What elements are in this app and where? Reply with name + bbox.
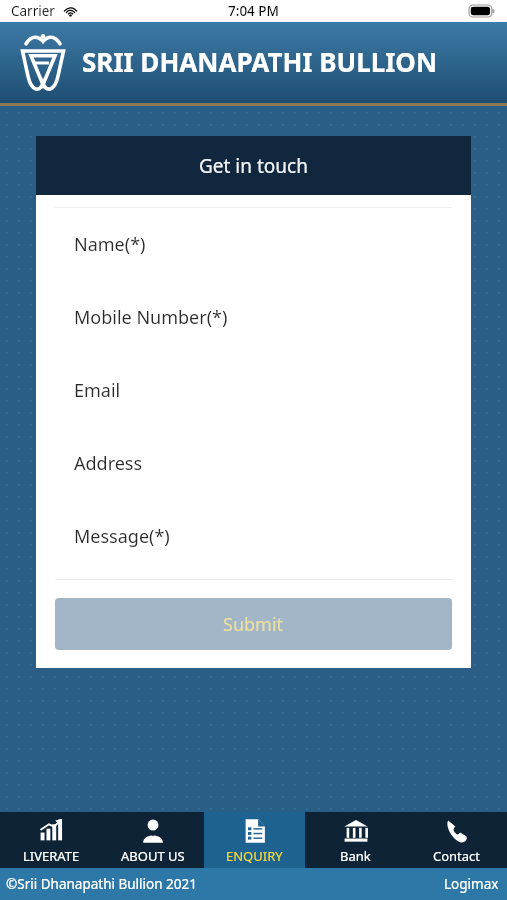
button[interactable]: About us [102, 812, 204, 868]
button[interactable]: Live rate [0, 812, 102, 868]
staticText: Bank [340, 847, 371, 865]
staticText: Get in touch [199, 153, 308, 179]
button[interactable]: Message(*) [36, 500, 471, 573]
staticText: LIVERATE [23, 847, 80, 865]
button[interactable]: Contact [406, 812, 507, 868]
staticText: Carrier [11, 2, 55, 20]
staticText: SRII DHANAPATHI BULLION [82, 44, 438, 79]
other: Enquiry [242, 818, 268, 844]
other: About us [140, 818, 166, 844]
staticText: ABOUT US [121, 847, 185, 865]
staticText: Name(*) [74, 232, 146, 257]
staticText: Contact [433, 847, 481, 865]
button[interactable]: Name(*) [36, 208, 471, 281]
staticText: 7:04 PM [228, 2, 279, 20]
button[interactable]: Email [36, 354, 471, 427]
button[interactable]: Enquiry [204, 812, 305, 868]
staticText: Address [74, 451, 143, 476]
staticText: Logimax [444, 875, 499, 893]
button[interactable]: Mobile Number(*) [36, 281, 471, 354]
other: Contact [444, 818, 470, 844]
button[interactable]: Submit [55, 598, 452, 650]
other: Live rate [38, 818, 64, 844]
staticText: ©Srii Dhanapathi Bullion 2021 [6, 875, 197, 893]
staticText: Mobile Number(*) [74, 305, 228, 330]
button[interactable]: Bank [305, 812, 406, 868]
other: Bank [343, 818, 369, 844]
staticText: ENQUIRY [226, 847, 283, 865]
button[interactable]: Address [36, 427, 471, 500]
staticText: Submit [223, 612, 284, 637]
staticText: Message(*) [74, 524, 170, 549]
staticText: Email [74, 378, 121, 403]
